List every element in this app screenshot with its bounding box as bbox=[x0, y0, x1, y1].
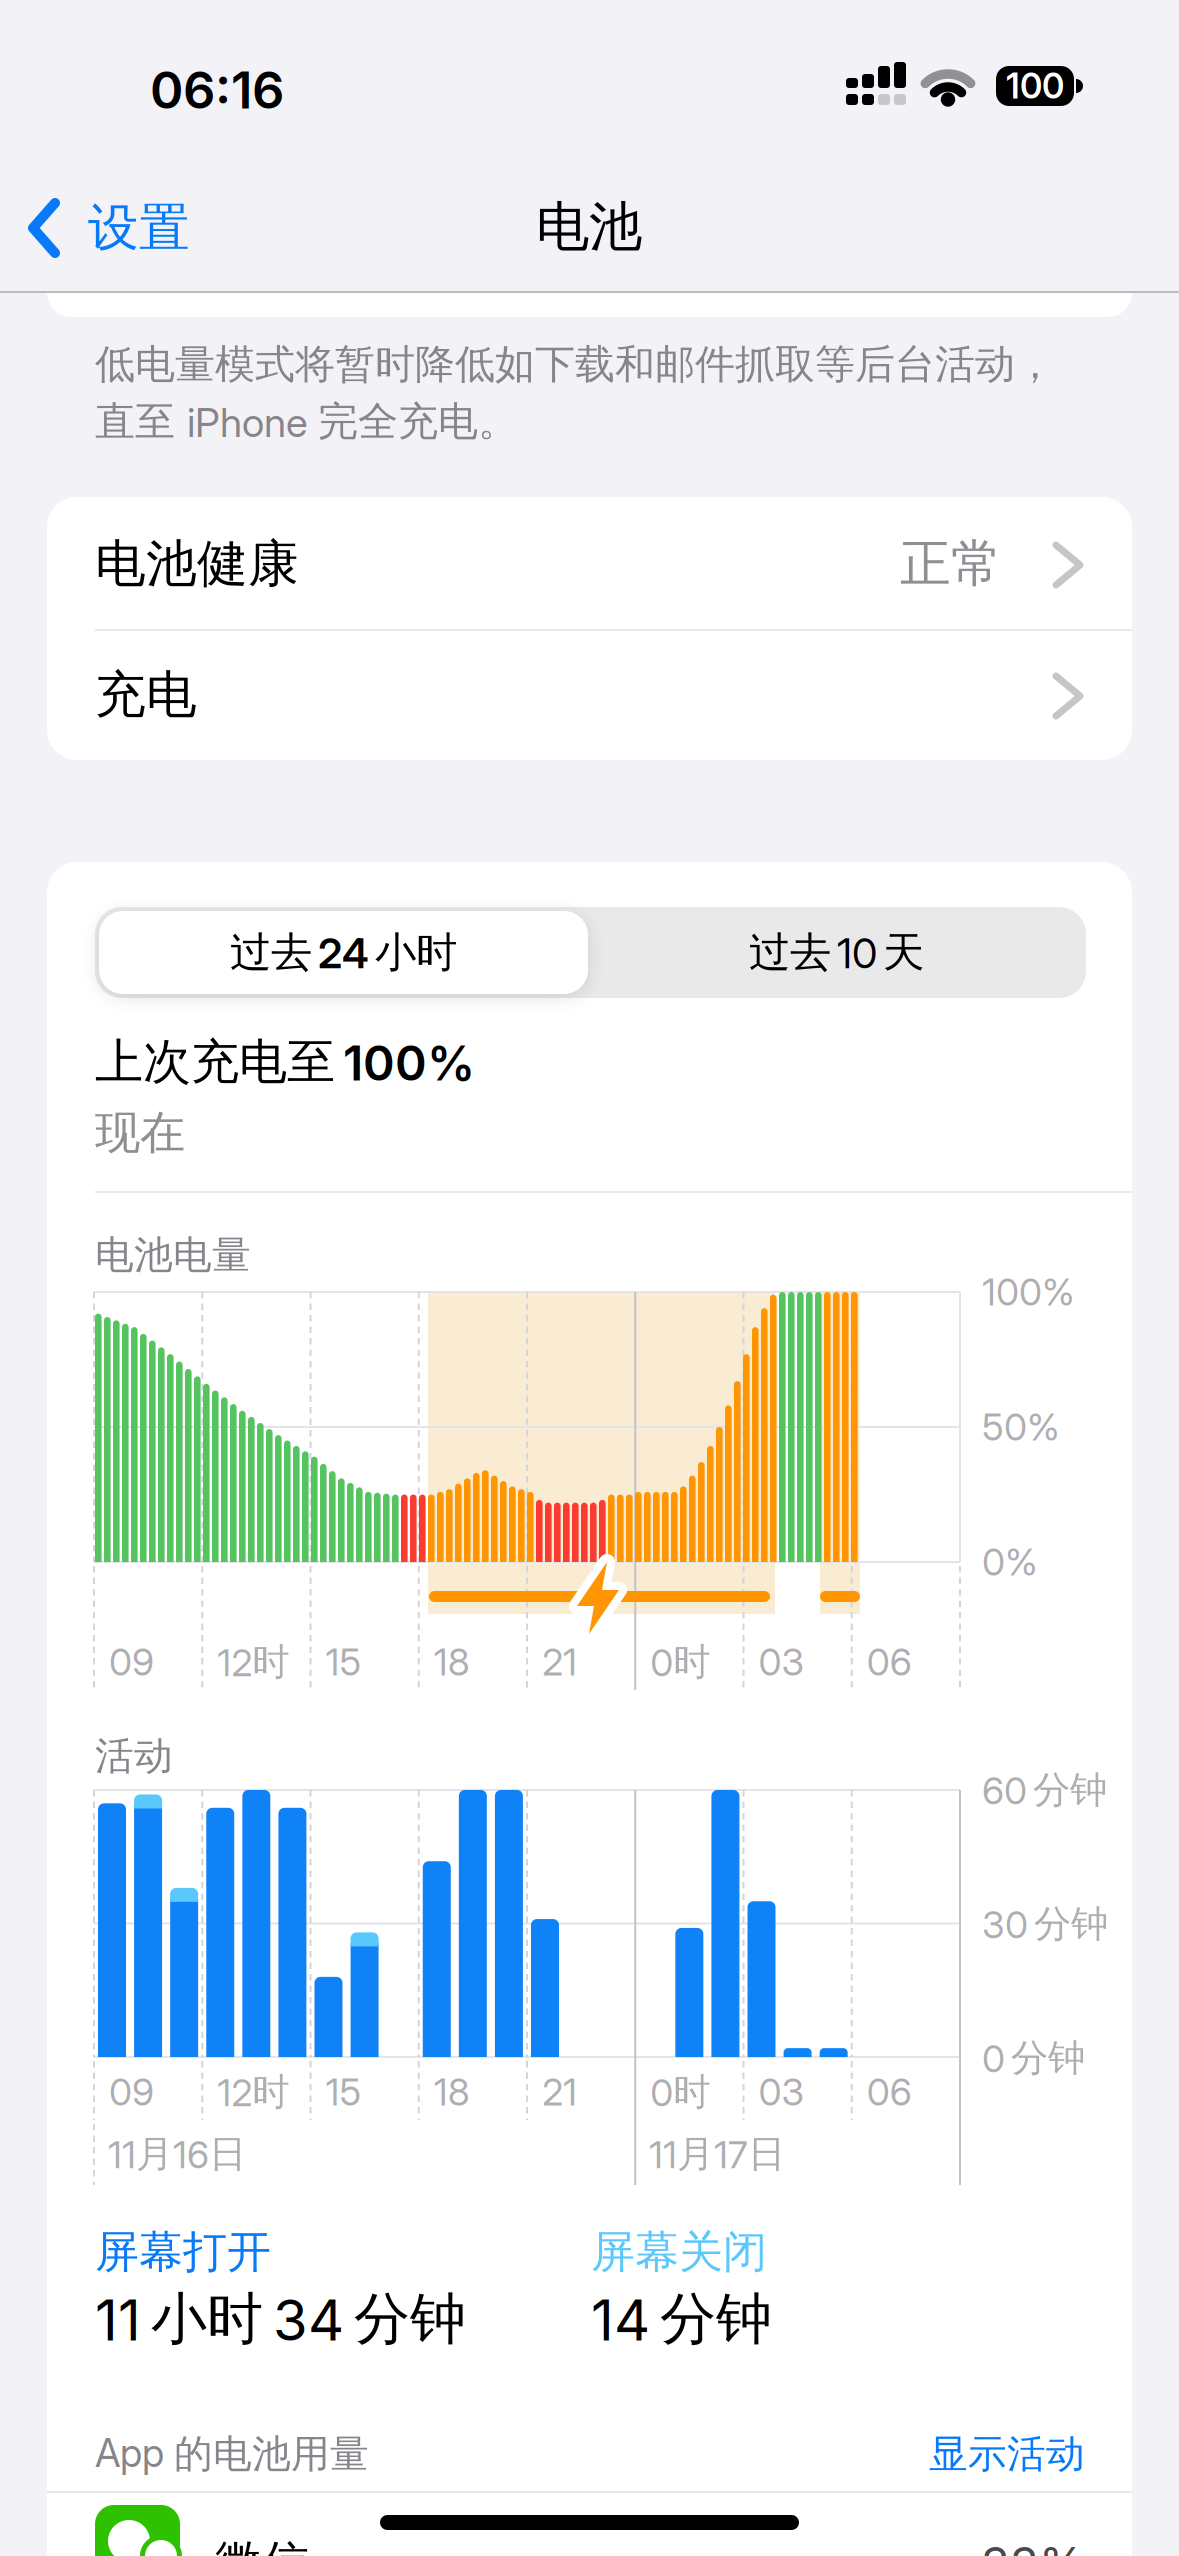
staticText: 低电量模式将暂时降低如下载和邮件抓取等后台活动， bbox=[95, 340, 1055, 389]
staticText: 15 bbox=[325, 1640, 361, 1684]
staticText: 09 bbox=[109, 1640, 154, 1684]
staticText: 21 bbox=[542, 2070, 577, 2114]
staticText: 0 分钟 bbox=[982, 2035, 1085, 2081]
staticText: 过去 24 小时 bbox=[230, 927, 457, 978]
staticText: 电池电量 bbox=[95, 1231, 251, 1279]
staticText: 100 bbox=[1006, 66, 1064, 106]
staticText: 正常 bbox=[900, 533, 1002, 595]
staticText: 11月17日 bbox=[649, 2131, 785, 2177]
staticText: 06 bbox=[867, 2070, 912, 2114]
staticText: 15 bbox=[325, 2070, 361, 2114]
staticText: 0% bbox=[982, 1540, 1038, 1584]
button[interactable]: 过去 24 小时 bbox=[99, 911, 588, 994]
staticText: 0时 bbox=[650, 1639, 710, 1685]
staticText: 充电 bbox=[95, 664, 197, 726]
staticText: 活动 bbox=[95, 1732, 173, 1780]
staticText: 18 bbox=[434, 1640, 470, 1684]
staticText: 电池 bbox=[536, 194, 642, 260]
button[interactable]: 过去 10 天 bbox=[592, 911, 1081, 994]
staticText: 设置 bbox=[88, 197, 190, 259]
staticText: 现在 bbox=[95, 1105, 185, 1161]
staticText: 50% bbox=[982, 1405, 1060, 1449]
staticText: 11月16日 bbox=[108, 2131, 246, 2177]
button[interactable]: 微信 bbox=[47, 2505, 1132, 2556]
staticText: 14 分钟 bbox=[591, 2285, 772, 2353]
staticText: App 的电池用量 bbox=[95, 2430, 369, 2478]
staticText: 过去 10 天 bbox=[749, 927, 924, 978]
button[interactable]: 充电 bbox=[47, 630, 1132, 760]
staticText: 微信 bbox=[215, 2534, 309, 2556]
staticText: 屏幕关闭 bbox=[591, 2225, 767, 2279]
button[interactable]: 显示活动 bbox=[825, 2430, 1085, 2478]
staticText: 显示活动 bbox=[929, 2430, 1085, 2478]
staticText: 09 bbox=[109, 2070, 154, 2114]
staticText: 18 bbox=[434, 2070, 470, 2114]
staticText: 60 分钟 bbox=[982, 1767, 1107, 1813]
staticText: 06 bbox=[867, 1640, 912, 1684]
staticText: 12时 bbox=[217, 2069, 289, 2115]
staticText: 100% bbox=[982, 1270, 1075, 1314]
staticText: 上次充电至 100% bbox=[95, 1032, 475, 1091]
staticText: 06:16 bbox=[150, 60, 284, 120]
button[interactable]: 电池健康 bbox=[47, 497, 1132, 629]
staticText: 电池健康 bbox=[95, 533, 299, 595]
staticText: 03 bbox=[758, 2070, 804, 2114]
staticText: 03 bbox=[758, 1640, 804, 1684]
staticText: 11 小时 34 分钟 bbox=[95, 2285, 466, 2353]
staticText: 0时 bbox=[650, 2069, 710, 2115]
staticText: 33% bbox=[981, 2536, 1085, 2556]
staticText: 21 bbox=[542, 1640, 577, 1684]
staticText: 30 分钟 bbox=[982, 1901, 1108, 1947]
staticText: 12时 bbox=[217, 1639, 289, 1685]
staticText: 屏幕打开 bbox=[95, 2225, 271, 2279]
staticText: 直至 iPhone 完全充电。 bbox=[95, 397, 518, 446]
button[interactable]: 设置 bbox=[28, 198, 190, 258]
